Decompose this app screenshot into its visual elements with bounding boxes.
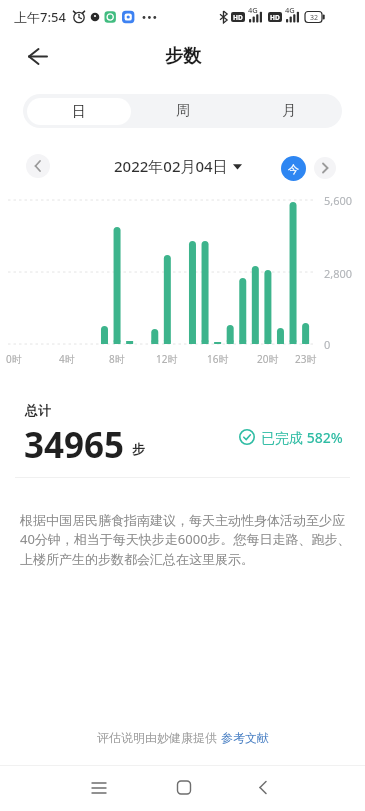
staticText: 评估说明由妙健康提供 xyxy=(97,729,221,745)
staticText: 34965 xyxy=(24,421,125,463)
staticText: 已完成 582% xyxy=(261,428,343,446)
staticText: 参考文献 xyxy=(221,730,269,745)
button[interactable] xyxy=(164,768,204,808)
button[interactable]: 今 xyxy=(281,156,306,181)
staticText: 4时 xyxy=(59,352,75,366)
staticText: 日 xyxy=(72,103,86,121)
staticText: 0时 xyxy=(6,352,22,366)
staticText: 4G xyxy=(285,5,295,13)
button[interactable]: 参考文献 xyxy=(221,730,269,745)
staticText: 5,600 xyxy=(324,193,353,207)
button[interactable]: 周 xyxy=(129,94,236,128)
staticText: 12时 xyxy=(156,352,178,366)
staticText: HD xyxy=(270,13,280,22)
staticText: 8时 xyxy=(109,352,125,366)
staticText: 今 xyxy=(288,162,299,176)
button[interactable] xyxy=(314,157,336,179)
staticText: 周 xyxy=(176,102,190,120)
staticText: HD xyxy=(233,13,243,22)
staticText: 总计 xyxy=(25,402,51,418)
staticText: 2022年02月04日 xyxy=(114,156,228,176)
button[interactable] xyxy=(243,768,283,808)
staticText: 月 xyxy=(282,102,296,120)
button[interactable] xyxy=(26,154,50,178)
staticText: 40分钟，相当于每天快步走6000步。您每日走路、跑步、 xyxy=(20,530,351,547)
button[interactable]: 月 xyxy=(236,94,342,128)
staticText: 23时 xyxy=(295,352,317,366)
staticText: 4G xyxy=(248,5,258,13)
staticText: 上午7:54 xyxy=(14,8,66,26)
button[interactable]: 日 xyxy=(27,98,131,125)
staticText: 步数 xyxy=(165,45,201,68)
staticText: 上楼所产生的步数都会汇总在这里展示。 xyxy=(20,551,254,567)
button[interactable] xyxy=(79,768,119,808)
staticText: 20时 xyxy=(257,352,279,366)
staticText: 32 xyxy=(310,13,319,22)
staticText: 步 xyxy=(132,441,145,457)
staticText: 2,800 xyxy=(324,266,353,280)
staticText: 根据中国居民膳食指南建议，每天主动性身体活动至少应 xyxy=(20,512,345,528)
staticText: 0 xyxy=(324,337,331,351)
staticText: 16时 xyxy=(207,352,229,366)
button[interactable] xyxy=(22,42,58,72)
button[interactable]: 2022年02月04日 xyxy=(106,154,250,178)
